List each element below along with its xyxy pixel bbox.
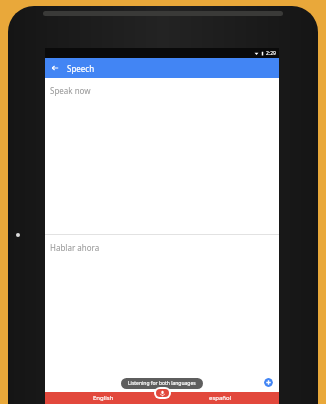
staticText: English — [93, 394, 114, 402]
button[interactable]: English — [45, 392, 162, 404]
staticText: Speech — [67, 63, 95, 74]
staticText: Hablar ahora — [50, 242, 100, 253]
staticText: Speak now — [50, 85, 91, 96]
staticText: Listening for both languages — [128, 380, 196, 387]
button[interactable]: español — [162, 392, 279, 404]
button[interactable]: Add — [264, 378, 273, 387]
staticText: 2:29 — [266, 50, 276, 57]
staticText: español — [209, 394, 232, 402]
button[interactable]: Microphone — [156, 389, 169, 397]
button[interactable]: Back — [45, 58, 65, 78]
